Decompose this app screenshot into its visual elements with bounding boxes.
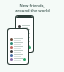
button[interactable] [16, 28, 33, 32]
button[interactable] [16, 36, 33, 40]
button[interactable] [8, 53, 28, 57]
button[interactable] [8, 45, 28, 49]
staticText: around the world [15, 8, 50, 13]
button[interactable] [8, 49, 28, 53]
button[interactable] [8, 37, 28, 41]
staticText: New friends, [19, 3, 45, 8]
button[interactable] [16, 44, 33, 48]
button[interactable]: Add friend [23, 58, 26, 61]
button[interactable] [16, 40, 33, 44]
button[interactable] [16, 24, 33, 28]
button[interactable] [16, 32, 33, 36]
button[interactable]: Add friend [28, 46, 31, 49]
button[interactable] [8, 57, 28, 61]
button[interactable] [8, 41, 28, 45]
